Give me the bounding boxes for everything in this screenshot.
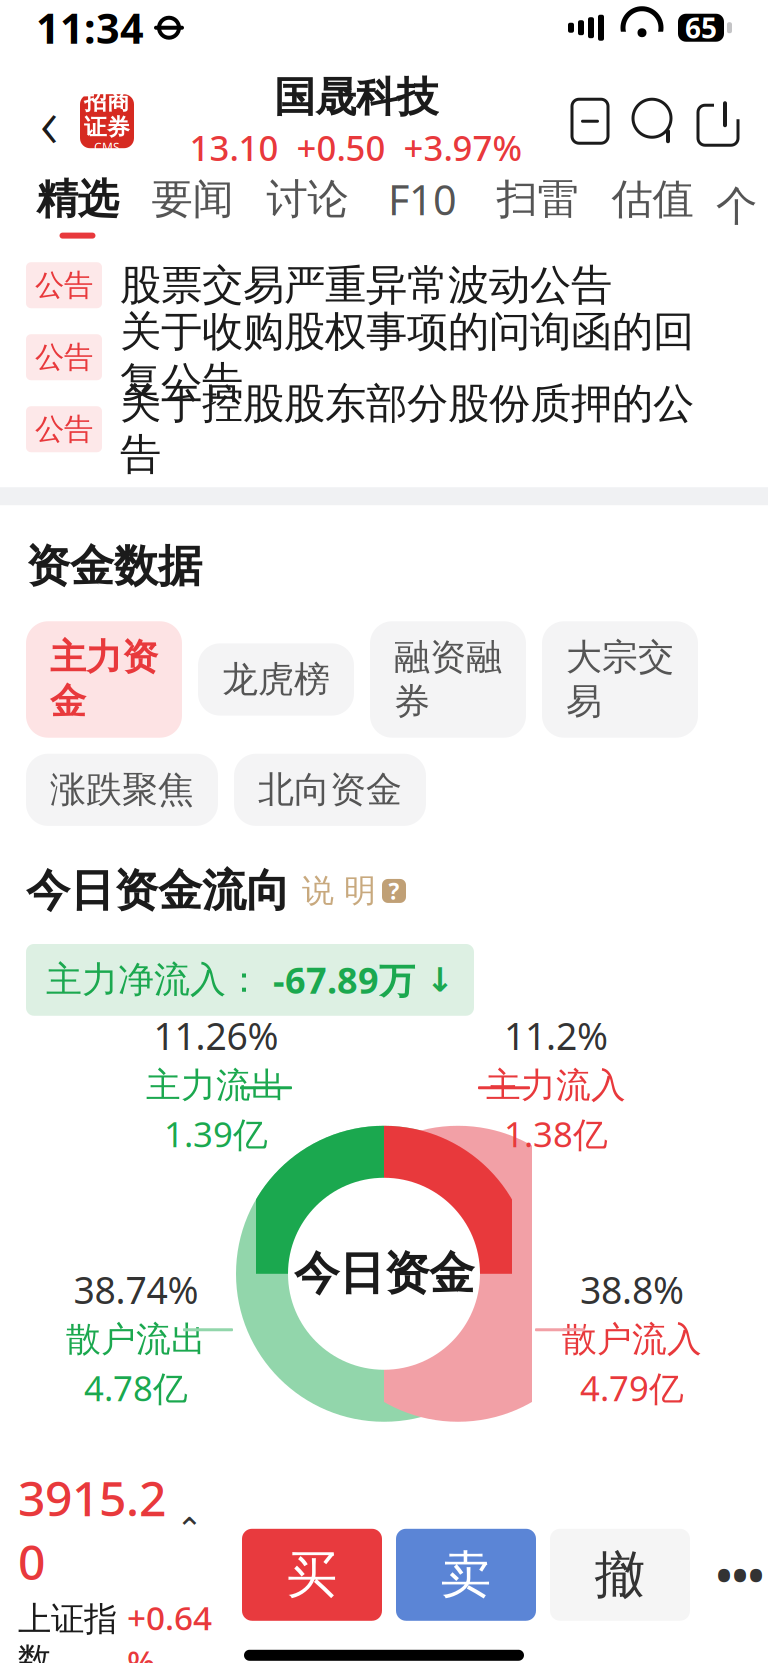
staticText: +0.50 bbox=[296, 125, 385, 171]
button[interactable]: More bbox=[704, 1529, 768, 1621]
staticText: 关于控股股东部分股份质押的公告 bbox=[120, 378, 694, 480]
staticText: 1.38亿 bbox=[504, 1111, 608, 1157]
staticText: 精选 bbox=[36, 174, 118, 225]
staticText: 资金数据 bbox=[26, 539, 202, 593]
staticText: 38.74% bbox=[73, 1265, 198, 1314]
staticText: 北向资金 bbox=[258, 768, 402, 812]
staticText: 3915.20 bbox=[18, 1466, 166, 1593]
button[interactable]: Minimize bbox=[566, 93, 614, 149]
staticText: ↓ bbox=[426, 961, 454, 999]
staticText: 个 bbox=[716, 181, 757, 232]
staticText: 今日资金流向 bbox=[26, 864, 290, 918]
button[interactable]: 估值 bbox=[595, 167, 710, 245]
button[interactable]: Search bbox=[630, 93, 678, 149]
staticText: 卖 bbox=[440, 1544, 491, 1606]
staticText: 关于收购股权事项的问询函的回复公告 bbox=[120, 306, 694, 408]
staticText: 65 bbox=[685, 9, 717, 46]
staticText: 散户流出 bbox=[66, 1318, 206, 1361]
staticText: ? bbox=[388, 876, 399, 906]
staticText: 涨跌聚焦 bbox=[50, 768, 194, 812]
staticText: 4.78亿 bbox=[84, 1365, 188, 1411]
staticText: +0.64% bbox=[127, 1595, 212, 1663]
staticText: 38.8% bbox=[580, 1265, 684, 1314]
staticText: 公告 bbox=[35, 339, 93, 375]
button[interactable]: 说 明 bbox=[302, 871, 406, 911]
button[interactable]: 公告 bbox=[0, 321, 768, 393]
button[interactable]: 涨跌聚焦 bbox=[26, 754, 218, 826]
staticText: ⌃ bbox=[176, 1511, 203, 1548]
staticText: -67.89万 bbox=[273, 956, 426, 1004]
button[interactable]: 龙虎榜 bbox=[198, 643, 354, 716]
staticText: 买 bbox=[286, 1544, 337, 1606]
staticText: 1.39亿 bbox=[164, 1111, 268, 1157]
button[interactable]: 3915.20 bbox=[0, 1466, 228, 1663]
staticText: CMS bbox=[94, 139, 120, 155]
staticText: 扫雷 bbox=[496, 174, 578, 225]
button[interactable]: 大宗交易 bbox=[542, 621, 698, 738]
staticText: ••• bbox=[716, 1546, 764, 1603]
staticText: 4.79亿 bbox=[580, 1365, 684, 1411]
staticText: +3.97% bbox=[403, 125, 522, 171]
staticText: 散户流入 bbox=[562, 1318, 702, 1361]
staticText: 公告 bbox=[35, 267, 93, 303]
staticText: 估值 bbox=[611, 174, 693, 225]
staticText: 撤 bbox=[594, 1544, 645, 1606]
button[interactable]: 卖 bbox=[396, 1529, 536, 1621]
staticText: 主力净流入： bbox=[46, 958, 273, 1002]
staticText: 龙虎榜 bbox=[222, 657, 330, 702]
button[interactable]: 精选 bbox=[20, 167, 135, 245]
button[interactable]: 要闻 bbox=[135, 167, 250, 245]
staticText: 上证指数 bbox=[18, 1599, 117, 1663]
staticText: 11.26% bbox=[153, 1011, 278, 1060]
button[interactable]: 扫雷 bbox=[480, 167, 595, 245]
staticText: 讨论 bbox=[266, 174, 348, 225]
staticText: 主力资金 bbox=[50, 635, 158, 724]
staticText: 证券 bbox=[84, 113, 130, 141]
button[interactable]: 主力资金 bbox=[26, 621, 182, 738]
staticText: 大宗交易 bbox=[566, 635, 674, 724]
staticText: F10 bbox=[388, 172, 457, 227]
staticText: 11:34 bbox=[36, 0, 144, 55]
staticText: 公告 bbox=[35, 411, 93, 447]
button[interactable]: 北向资金 bbox=[234, 754, 426, 826]
button[interactable]: 撤 bbox=[550, 1529, 690, 1621]
staticText: 主力流入 bbox=[486, 1064, 626, 1107]
staticText: 今日资金 bbox=[294, 1246, 474, 1302]
staticText: 13.10 bbox=[189, 125, 278, 171]
button[interactable]: F10 bbox=[365, 167, 480, 245]
button[interactable]: Share bbox=[694, 93, 742, 149]
staticText: 招商 bbox=[84, 87, 130, 115]
button[interactable]: 公告 bbox=[0, 393, 768, 465]
staticText: 要闻 bbox=[151, 174, 233, 225]
button[interactable]: 融资融券 bbox=[370, 621, 526, 738]
staticText: 股票交易严重异常波动公告 bbox=[120, 260, 612, 311]
button[interactable]: 讨论 bbox=[250, 167, 365, 245]
staticText: 11.2% bbox=[504, 1011, 608, 1060]
staticText: ‹ bbox=[40, 75, 58, 167]
button[interactable]: Back bbox=[26, 86, 72, 156]
button[interactable]: 买 bbox=[242, 1529, 382, 1621]
button[interactable]: 公告 bbox=[0, 249, 768, 321]
staticText: 说 明 bbox=[302, 871, 376, 911]
staticText: 国晟科技 bbox=[274, 72, 438, 123]
staticText: 融资融券 bbox=[394, 635, 502, 724]
staticText: 主力流出 bbox=[146, 1064, 286, 1107]
